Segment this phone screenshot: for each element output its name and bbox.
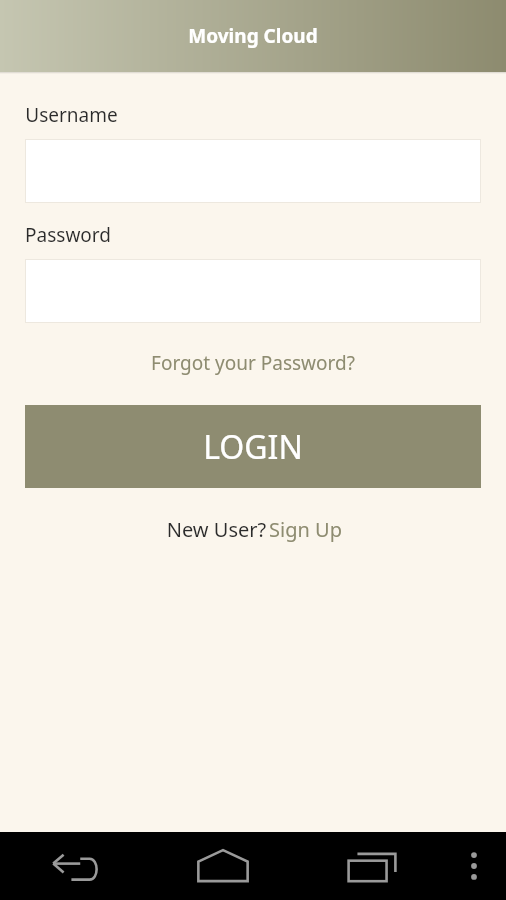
button[interactable]: More options [446,832,502,900]
staticText: Sign Up [269,516,342,543]
staticText: Username [25,102,118,128]
staticText: New User? [164,516,269,543]
staticText: LOGIN [203,425,303,469]
button[interactable]: Recent apps [297,832,446,900]
staticText: Password [25,222,111,248]
button[interactable]: Sign Up [269,514,342,545]
button[interactable] [25,259,481,323]
staticText: Forgot your Password? [151,350,355,376]
staticText: Moving Cloud [188,23,318,49]
button[interactable]: LOGIN [25,405,481,488]
button[interactable] [25,139,481,203]
button[interactable]: Back [0,832,148,900]
button[interactable]: Forgot your Password? [0,344,506,382]
button[interactable]: Home [148,832,297,900]
